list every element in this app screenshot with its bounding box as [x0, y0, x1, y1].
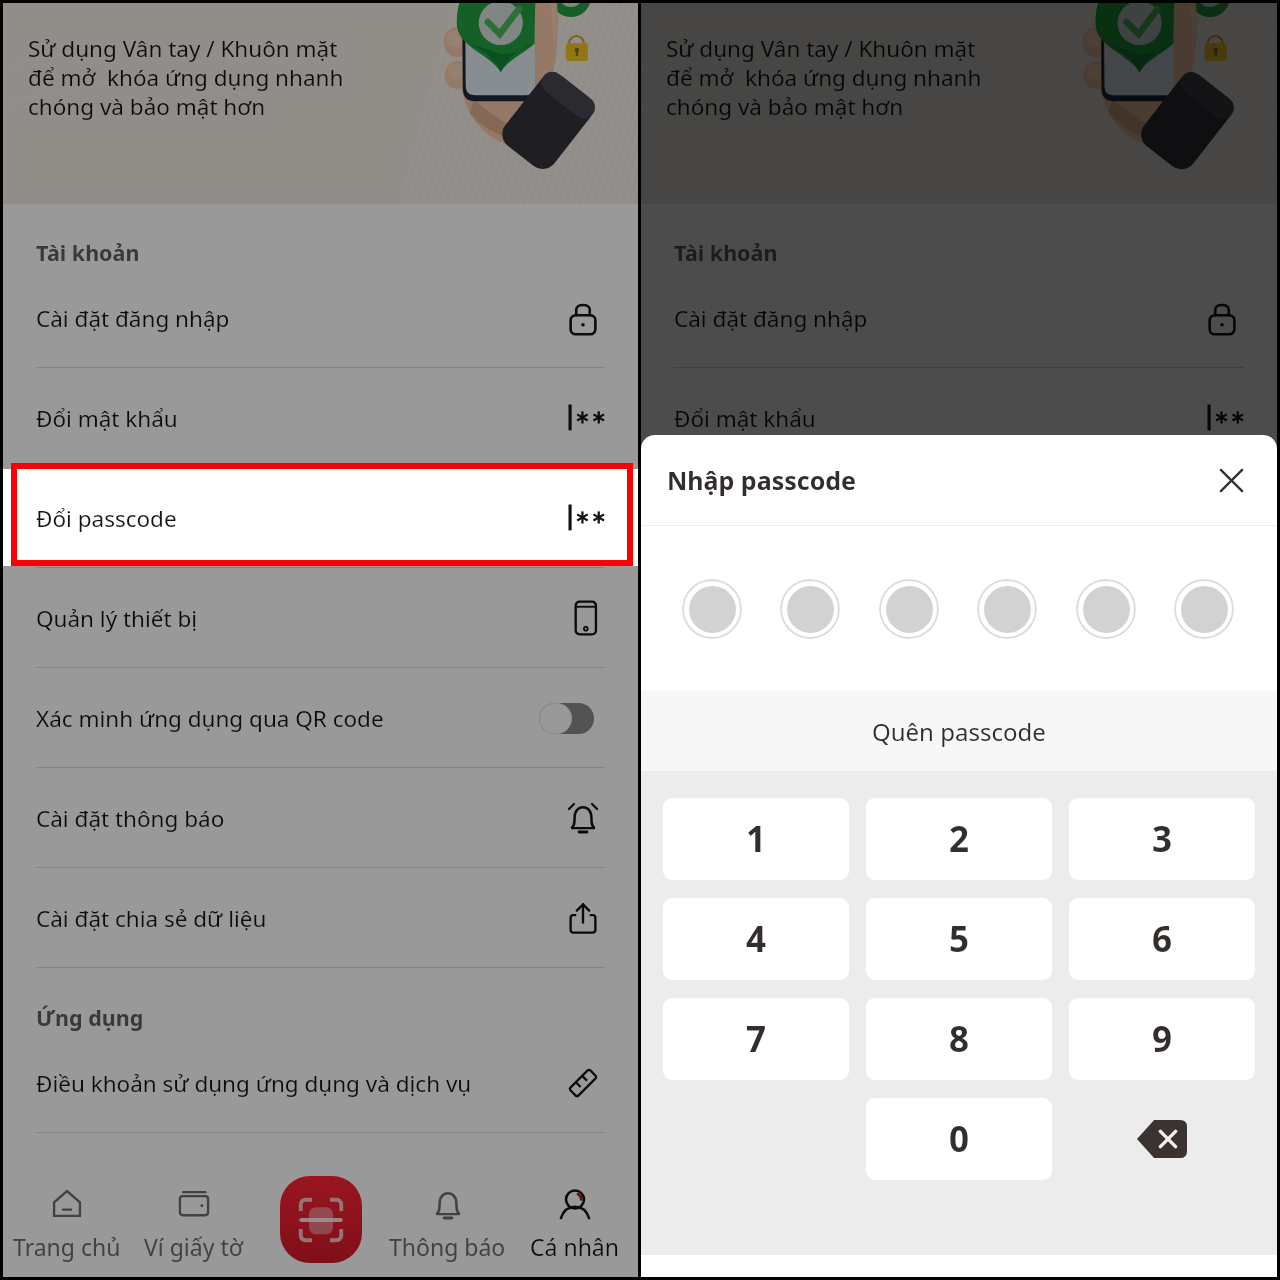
button[interactable]: 1: [663, 798, 849, 880]
button[interactable]: Cài đặt đăng nhập: [3, 268, 638, 368]
staticText: 3: [1152, 815, 1173, 863]
button[interactable]: Đổi passcode: [641, 468, 1277, 568]
staticText: Cài đặt thông báo: [36, 803, 565, 834]
staticText: Cài đặt chia sẻ dữ liệu: [36, 903, 565, 934]
button[interactable]: 5: [866, 898, 1052, 980]
button[interactable]: Điều khoản sử dụng ứng dụng và dịch vụ: [641, 1033, 1277, 1133]
staticText: 2: [949, 815, 970, 863]
button[interactable]: Ví giấy tờ: [769, 1133, 896, 1277]
button[interactable]: Quản lý thiết bị: [641, 568, 1277, 668]
button[interactable]: 7: [663, 998, 849, 1080]
button[interactable]: 8: [866, 998, 1052, 1080]
staticText: Ứng dụng: [36, 1003, 144, 1032]
button[interactable]: Cài đặt chia sẻ dữ liệu: [641, 868, 1277, 968]
button[interactable]: Xóa: [1069, 1098, 1255, 1180]
button[interactable]: Đổi mật khẩu: [641, 368, 1277, 468]
button[interactable]: Cài đặt thông báo: [3, 768, 638, 868]
staticText: 7: [746, 1015, 767, 1063]
button[interactable]: Cài đặt thông báo: [641, 768, 1277, 868]
staticText: 1: [746, 815, 767, 863]
button[interactable]: Cài đặt đăng nhập: [641, 268, 1277, 368]
staticText: Nhập passcode: [667, 463, 1207, 497]
staticText: Tài khoản: [36, 238, 140, 267]
staticText: Cài đặt chia sẻ dữ liệu: [674, 903, 1204, 934]
staticText: Cài đặt đăng nhập: [674, 303, 1204, 334]
staticText: Sử dụng Vân tay / Khuôn mặt để mở khóa ứ…: [28, 33, 344, 121]
button[interactable]: Đóng: [1207, 456, 1255, 504]
button[interactable]: Đổi passcode: [3, 468, 638, 568]
staticText: Sử dụng Vân tay / Khuôn mặt để mở khóa ứ…: [666, 33, 982, 121]
staticText: Ví giấy tờ: [783, 1231, 882, 1262]
staticText: Cài đặt thông báo: [674, 803, 1204, 834]
staticText: Quên passcode: [872, 715, 1046, 748]
button[interactable]: 2: [866, 798, 1052, 880]
staticText: Thông báo: [1028, 1231, 1145, 1262]
staticText: Tài khoản: [674, 238, 778, 267]
staticText: Quản lý thiết bị: [674, 603, 1204, 634]
button[interactable]: Thông báo: [1023, 1133, 1150, 1277]
button[interactable]: Đổi mật khẩu: [3, 368, 638, 468]
button[interactable]: 3: [1069, 798, 1255, 880]
button[interactable]: Cài đặt chia sẻ dữ liệu: [3, 868, 638, 968]
staticText: Trang chủ: [13, 1231, 121, 1262]
staticText: 5: [949, 915, 970, 963]
button[interactable]: 6: [1069, 898, 1255, 980]
button[interactable]: Quản lý thiết bị: [3, 568, 638, 668]
staticText: 0: [949, 1115, 970, 1163]
button[interactable]: Quên passcode: [641, 691, 1277, 771]
staticText: Cài đặt đăng nhập: [36, 303, 565, 334]
button[interactable]: Quét mã: [280, 1176, 362, 1263]
button[interactable]: Điều khoản sử dụng ứng dụng và dịch vụ: [3, 1033, 638, 1133]
staticText: Đổi mật khẩu: [674, 403, 1204, 434]
button[interactable]: 9: [1069, 998, 1255, 1080]
staticText: Ví giấy tờ: [144, 1231, 243, 1262]
staticText: Xác minh ứng dụng qua QR code: [674, 703, 1178, 734]
button[interactable]: Ví giấy tờ: [130, 1133, 257, 1277]
staticText: 9: [1152, 1015, 1173, 1063]
staticText: Điều khoản sử dụng ứng dụng và dịch vụ: [674, 1068, 1204, 1099]
staticText: Đổi mật khẩu: [36, 403, 565, 434]
staticText: Cá nhân: [530, 1231, 619, 1262]
staticText: Ứng dụng: [674, 1003, 782, 1032]
button[interactable]: Quét mã: [919, 1176, 1001, 1263]
button[interactable]: Trang chủ: [641, 1133, 769, 1277]
staticText: Thông báo: [389, 1231, 506, 1262]
staticText: Cá nhân: [1169, 1231, 1258, 1262]
staticText: Đổi passcode: [36, 503, 565, 534]
button[interactable]: Thông báo: [384, 1133, 511, 1277]
staticText: 6: [1152, 915, 1173, 963]
button[interactable]: Trang chủ: [3, 1133, 130, 1277]
button[interactable]: Cá nhân: [511, 1133, 638, 1277]
staticText: Trang chủ: [651, 1231, 759, 1262]
button[interactable]: Cá nhân: [1150, 1133, 1277, 1277]
staticText: 4: [746, 915, 767, 963]
staticText: Điều khoản sử dụng ứng dụng và dịch vụ: [36, 1068, 565, 1099]
staticText: Quản lý thiết bị: [36, 603, 565, 634]
staticText: Xác minh ứng dụng qua QR code: [36, 703, 539, 734]
staticText: Đổi passcode: [674, 503, 1204, 534]
button[interactable]: 4: [663, 898, 849, 980]
button[interactable]: Xác minh ứng dụng qua QR code: [3, 668, 638, 768]
button[interactable]: 0: [866, 1098, 1052, 1180]
staticText: 8: [949, 1015, 970, 1063]
button[interactable]: Xác minh ứng dụng qua QR code: [641, 668, 1277, 768]
